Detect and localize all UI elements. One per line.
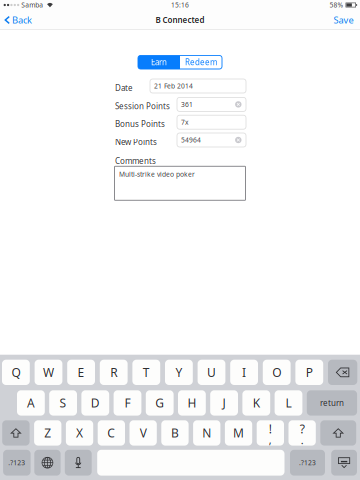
button[interactable]: P: [295, 360, 323, 385]
button[interactable]: Space: [97, 450, 284, 476]
staticText: R: [110, 364, 117, 380]
button[interactable]: N: [193, 420, 220, 446]
staticText: return: [320, 398, 344, 408]
staticText: 21 Feb 2014: [154, 82, 193, 90]
button[interactable]: J: [210, 390, 238, 416]
button[interactable]: Dictation: [65, 450, 92, 476]
button[interactable]: !: [257, 420, 284, 446]
staticText: Bonus Points: [115, 119, 165, 129]
button[interactable]: Delete: [328, 360, 357, 385]
staticText: W: [43, 364, 54, 380]
button[interactable]: M: [225, 420, 252, 446]
staticText: H: [187, 395, 196, 411]
button[interactable]: T: [132, 360, 160, 385]
button[interactable]: K: [242, 390, 270, 416]
button[interactable]: 21 Feb 2014: [150, 79, 246, 93]
staticText: L: [285, 395, 291, 411]
button[interactable]: Q: [2, 360, 30, 385]
button[interactable]: Z: [34, 420, 61, 446]
staticText: K: [253, 395, 260, 411]
staticText: Redeem: [185, 57, 217, 67]
staticText: A: [27, 395, 35, 411]
button[interactable]: 361: [177, 97, 246, 111]
staticText: T: [143, 364, 150, 380]
staticText: ?: [300, 421, 305, 437]
staticText: O: [272, 364, 281, 380]
button[interactable]: E: [67, 360, 95, 385]
button[interactable]: X: [66, 420, 93, 446]
staticText: .?123: [8, 458, 25, 467]
staticText: ,: [269, 433, 272, 447]
button[interactable]: ?: [288, 420, 316, 446]
button[interactable]: .?123: [3, 450, 31, 476]
staticText: C: [107, 425, 115, 441]
staticText: M: [233, 425, 244, 441]
button[interactable]: U: [198, 360, 225, 385]
staticText: Z: [44, 425, 51, 441]
button[interactable]: Shift: [320, 420, 356, 446]
staticText: N: [202, 425, 211, 441]
button[interactable]: H: [178, 390, 206, 416]
staticText: Save: [333, 14, 353, 26]
staticText: F: [124, 395, 130, 411]
staticText: Date: [115, 82, 133, 93]
staticText: S: [60, 395, 67, 411]
button[interactable]: D: [81, 390, 109, 416]
staticText: .: [301, 433, 304, 447]
button[interactable]: Redeem: [180, 55, 222, 69]
button[interactable]: C: [98, 420, 125, 446]
button[interactable]: 7x: [177, 115, 246, 129]
button[interactable]: 54964: [177, 133, 246, 147]
staticText: !: [269, 421, 272, 437]
staticText: I: [242, 364, 246, 380]
button[interactable]: V: [129, 420, 157, 446]
button[interactable]: Multi-strike video poker: [114, 166, 245, 200]
staticText: G: [155, 395, 164, 411]
button[interactable]: Back: [0, 10, 37, 30]
staticText: 361: [181, 100, 193, 109]
button[interactable]: Next keyboard: [34, 450, 61, 476]
button[interactable]: I: [230, 360, 258, 385]
button[interactable]: R: [100, 360, 128, 385]
staticText: V: [140, 425, 147, 441]
staticText: Y: [175, 364, 182, 380]
staticText: Multi-strike video poker: [119, 170, 195, 179]
button[interactable]: Y: [165, 360, 193, 385]
staticText: U: [207, 364, 216, 380]
button[interactable]: W: [35, 360, 62, 385]
staticText: 7x: [181, 118, 189, 127]
button[interactable]: G: [146, 390, 174, 416]
button[interactable]: return: [307, 390, 357, 416]
button[interactable]: Shift: [2, 420, 30, 446]
staticText: Earn: [151, 57, 167, 67]
button[interactable]: S: [49, 390, 77, 416]
staticText: B: [171, 425, 179, 441]
staticText: 54964: [181, 136, 201, 144]
staticText: New Points: [115, 136, 157, 147]
staticText: J: [223, 395, 226, 411]
staticText: Q: [11, 364, 20, 380]
staticText: Back: [12, 14, 32, 26]
button[interactable]: F: [114, 390, 141, 416]
staticText: E: [78, 364, 85, 380]
staticText: X: [76, 425, 83, 441]
button[interactable]: O: [263, 360, 291, 385]
staticText: D: [91, 395, 100, 411]
staticText: 58%: [330, 1, 344, 9]
button[interactable]: Earn: [138, 55, 180, 69]
button[interactable]: .?123: [290, 450, 325, 476]
staticText: B Connected: [155, 15, 204, 25]
button[interactable]: A: [17, 390, 45, 416]
staticText: Session Points: [115, 101, 170, 111]
staticText: Samba: [21, 1, 43, 9]
staticText: .?123: [299, 458, 316, 467]
staticText: 15:16: [171, 1, 189, 9]
button[interactable]: B: [161, 420, 189, 446]
staticText: P: [306, 364, 313, 380]
button[interactable]: L: [275, 390, 302, 416]
button[interactable]: Hide keyboard: [331, 450, 357, 476]
staticText: Comments: [115, 155, 156, 166]
button[interactable]: Save: [327, 10, 360, 30]
